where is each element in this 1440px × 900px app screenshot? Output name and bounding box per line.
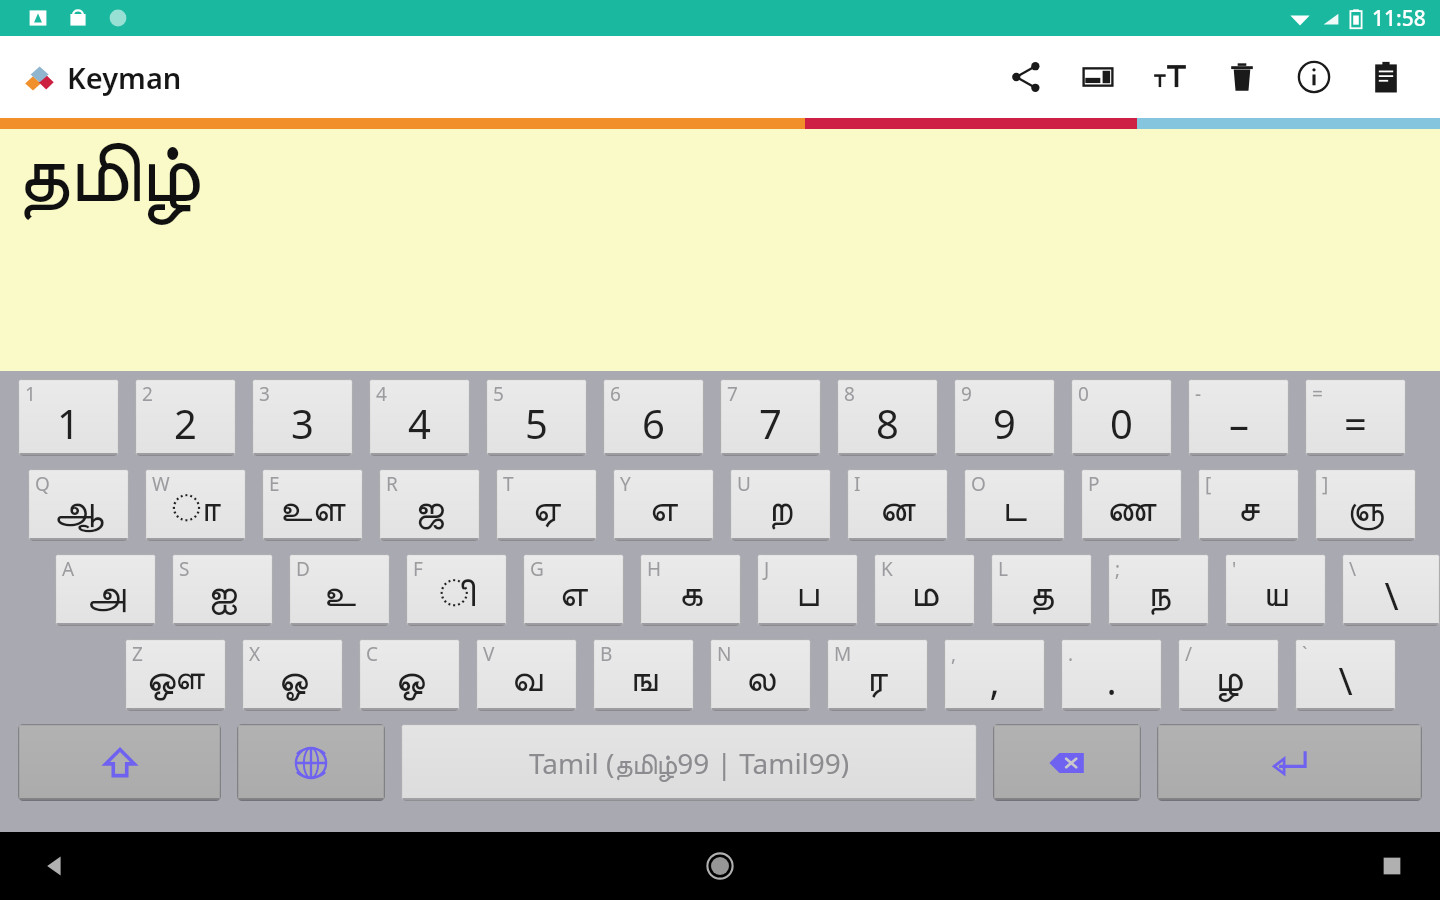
staticText: ஔ	[146, 661, 205, 699]
button[interactable]: -	[1188, 379, 1289, 456]
staticText: ,	[951, 641, 957, 667]
button[interactable]: N	[710, 639, 811, 711]
button[interactable]: Shift	[18, 724, 221, 801]
button[interactable]: J	[757, 554, 858, 626]
button[interactable]: \	[1342, 554, 1440, 626]
button[interactable]: '	[1225, 554, 1326, 626]
button[interactable]: U	[730, 469, 831, 541]
button[interactable]: 5	[486, 379, 587, 456]
staticText: ஐ	[208, 576, 237, 614]
staticText: 6	[642, 396, 665, 450]
button[interactable]: Z	[125, 639, 226, 711]
staticText: ஏ	[532, 491, 561, 529]
button[interactable]: K	[874, 554, 975, 626]
button[interactable]: Clipboard	[1350, 41, 1422, 113]
button[interactable]: R	[379, 469, 480, 541]
staticText: 5	[493, 381, 504, 407]
button[interactable]: M	[827, 639, 928, 711]
button[interactable]: .	[1061, 639, 1162, 711]
staticText: 9	[961, 381, 972, 407]
button[interactable]: D	[289, 554, 390, 626]
button[interactable]: S	[172, 554, 273, 626]
button[interactable]: ,	[944, 639, 1045, 711]
button[interactable]: Home	[480, 832, 960, 900]
staticText: 0	[1110, 396, 1133, 450]
button[interactable]: =	[1305, 379, 1406, 456]
button[interactable]: தமிழ்	[0, 129, 1440, 371]
staticText: 3	[291, 396, 314, 450]
staticText: எ	[559, 576, 588, 614]
staticText: E	[269, 471, 280, 497]
staticText: Z	[132, 641, 143, 667]
button[interactable]: P	[1081, 469, 1182, 541]
staticText: /	[1185, 641, 1193, 667]
button[interactable]: X	[242, 639, 343, 711]
button[interactable]: 8	[837, 379, 938, 456]
button[interactable]: F	[406, 554, 507, 626]
button[interactable]: 0	[1071, 379, 1172, 456]
staticText: 6	[610, 381, 621, 407]
button[interactable]: Clear text	[1206, 41, 1278, 113]
staticText: 3	[259, 381, 270, 407]
staticText: 11:58	[1372, 4, 1426, 33]
button[interactable]: Back	[0, 832, 480, 900]
staticText: 7	[759, 396, 782, 450]
button[interactable]: [	[1198, 469, 1299, 541]
button[interactable]: W	[145, 469, 246, 541]
staticText: ம	[911, 576, 939, 614]
button[interactable]: Share	[990, 41, 1062, 113]
button[interactable]: L	[991, 554, 1092, 626]
button[interactable]: 7	[720, 379, 821, 456]
staticText: Q	[35, 471, 50, 497]
button[interactable]: I	[847, 469, 948, 541]
staticText: [	[1205, 471, 1212, 497]
button[interactable]: O	[964, 469, 1065, 541]
button[interactable]: Keyboard picker	[1062, 41, 1134, 113]
button[interactable]: /	[1178, 639, 1279, 711]
button[interactable]: Backspace	[993, 724, 1141, 801]
button[interactable]: ]	[1315, 469, 1416, 541]
staticText: உ	[323, 576, 356, 614]
button[interactable]: 2	[135, 379, 236, 456]
staticText: 5	[525, 396, 548, 450]
staticText: ;	[1115, 556, 1121, 582]
button[interactable]: Tamil (தமிழ்99 | Tamil99)	[401, 724, 977, 801]
button[interactable]: A	[55, 554, 156, 626]
button[interactable]: Change keyboard	[237, 724, 385, 801]
button[interactable]: Enter	[1157, 724, 1422, 801]
staticText: ,	[989, 654, 1000, 706]
button[interactable]: G	[523, 554, 624, 626]
button[interactable]: 3	[252, 379, 353, 456]
button[interactable]: Text size	[1134, 41, 1206, 113]
button[interactable]: H	[640, 554, 741, 626]
button[interactable]: T	[496, 469, 597, 541]
button[interactable]: `	[1295, 639, 1396, 711]
button[interactable]: Y	[613, 469, 714, 541]
staticText: \	[1384, 569, 1399, 621]
button[interactable]: 6	[603, 379, 704, 456]
button[interactable]: 9	[954, 379, 1055, 456]
staticText: C	[366, 641, 379, 667]
button[interactable]: C	[359, 639, 460, 711]
button[interactable]: Q	[28, 469, 129, 541]
staticText: ண	[1106, 491, 1157, 529]
staticText: ி	[439, 576, 475, 614]
button[interactable]: Info	[1278, 41, 1350, 113]
staticText: Keyman	[67, 58, 182, 97]
staticText: J	[764, 556, 770, 582]
staticText: =	[1344, 396, 1367, 450]
button[interactable]: ;	[1108, 554, 1209, 626]
staticText: ழ	[1215, 661, 1243, 699]
button[interactable]: 1	[18, 379, 119, 456]
button[interactable]: E	[262, 469, 363, 541]
staticText: த	[1029, 576, 1054, 614]
button[interactable]: Recents	[960, 832, 1440, 900]
button[interactable]: V	[476, 639, 577, 711]
staticText: 8	[876, 396, 899, 450]
button[interactable]: Keyman	[24, 58, 182, 97]
staticText: ஞ	[1347, 491, 1384, 529]
staticText: U	[737, 471, 751, 497]
staticText: Y	[620, 471, 631, 497]
button[interactable]: 4	[369, 379, 470, 456]
button[interactable]: B	[593, 639, 694, 711]
